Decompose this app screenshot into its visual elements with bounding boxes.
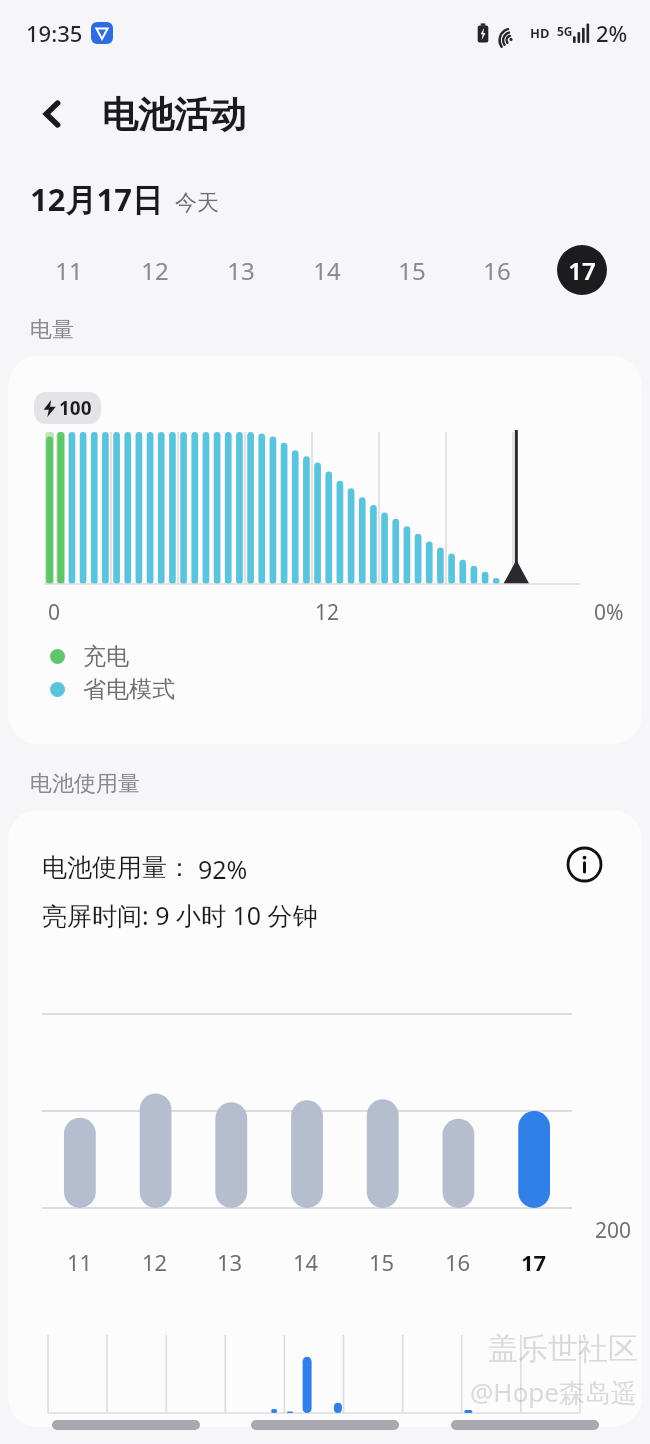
staticText: 13 <box>227 254 255 287</box>
staticText: 13 <box>217 1247 243 1277</box>
button[interactable]: 15 <box>369 242 454 298</box>
staticText: 14 <box>293 1247 319 1277</box>
button[interactable]: 14 <box>284 242 369 298</box>
button[interactable]: 11 <box>26 242 112 298</box>
button[interactable]: 省电模式 <box>50 675 175 704</box>
staticText: 今天 <box>175 189 219 217</box>
staticText: 200 <box>595 1216 632 1245</box>
button[interactable]: 导航 <box>451 1420 599 1430</box>
button[interactable]: 100 <box>8 356 642 744</box>
staticText: 2% <box>596 18 628 48</box>
staticText: 电池使用量 <box>30 770 140 798</box>
button[interactable]: 12 <box>112 242 198 298</box>
staticText: 15 <box>398 254 426 287</box>
staticText: HD <box>530 24 550 42</box>
staticText: 电量 <box>30 316 74 344</box>
staticText: 100 <box>59 395 92 421</box>
staticText: 16 <box>483 254 511 287</box>
staticText: 17 <box>568 254 596 287</box>
staticText: 12月17日 <box>30 178 163 220</box>
button[interactable]: 充电 <box>50 642 129 671</box>
staticText: 17 <box>521 1247 547 1277</box>
staticText: 16 <box>445 1247 471 1277</box>
staticText: 92% <box>198 852 248 886</box>
staticText: 充电 <box>83 642 129 671</box>
button[interactable]: 16 <box>454 242 539 298</box>
staticText: 19:35 <box>26 18 83 48</box>
staticText: 15 <box>369 1247 395 1277</box>
staticText: 14 <box>313 254 341 287</box>
staticText: 省电模式 <box>83 675 175 704</box>
button[interactable]: 13 <box>198 242 284 298</box>
staticText: 12 <box>142 1247 168 1277</box>
button[interactable]: 导航 <box>251 1420 399 1430</box>
staticText: 11 <box>55 254 83 287</box>
staticText: 11 <box>67 1247 93 1277</box>
button[interactable]: 返回 <box>26 87 80 141</box>
staticText: 0 <box>48 598 61 627</box>
staticText: 盖乐世社区 <box>488 1330 638 1368</box>
staticText: @Hope森岛遥 <box>470 1374 638 1410</box>
staticText: 5G <box>557 23 573 39</box>
button[interactable]: 信息 <box>560 840 608 888</box>
staticText: 0% <box>594 598 624 627</box>
staticText: 电池活动 <box>102 92 246 137</box>
staticText: 电池使用量： <box>42 852 192 883</box>
button[interactable]: 导航 <box>52 1420 200 1430</box>
staticText: 亮屏时间: 9 小时 10 分钟 <box>42 898 318 932</box>
button[interactable]: 17 <box>539 242 624 298</box>
staticText: 12 <box>141 254 169 287</box>
staticText: 12 <box>315 598 340 627</box>
